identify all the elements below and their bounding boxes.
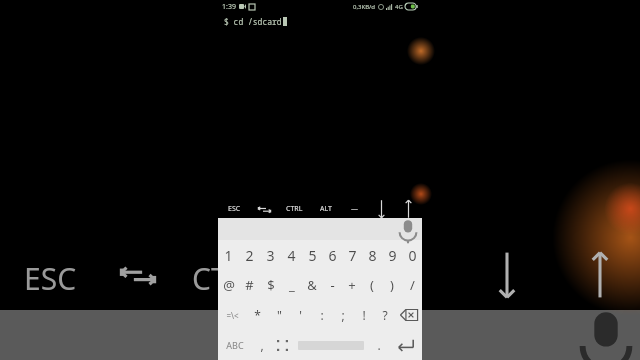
staticText: 2 [245, 246, 254, 265]
staticText: =\< [226, 310, 239, 321]
button[interactable]: 9 [382, 240, 402, 270]
button[interactable]: # [239, 270, 260, 300]
button[interactable]: / [402, 270, 422, 300]
button[interactable]: 6 [322, 240, 342, 270]
staticText: ! [362, 307, 366, 323]
staticText: 5 [308, 246, 317, 265]
button[interactable]: 0 [402, 240, 422, 270]
staticText: 1:39 [222, 2, 236, 12]
button[interactable]: - [322, 270, 342, 300]
button[interactable]: ABC [218, 330, 251, 360]
staticText: 4 [287, 246, 296, 265]
staticText: ALT [320, 204, 332, 214]
staticText: : [320, 307, 324, 323]
staticText: @ [223, 276, 235, 294]
staticText: 6 [328, 246, 337, 265]
button[interactable]: " [268, 300, 290, 330]
staticText: CT [192, 258, 228, 299]
button[interactable]: $ [260, 270, 281, 300]
staticText: 0,3KB/d [353, 3, 376, 11]
button[interactable]: ; [332, 300, 353, 330]
button[interactable]: Tab [251, 200, 278, 218]
button[interactable]: , [251, 330, 272, 360]
button[interactable]: 2 [239, 240, 260, 270]
button[interactable]: _ [281, 270, 302, 300]
staticText: # [245, 276, 254, 294]
button[interactable]: Arrow up [395, 200, 422, 218]
button[interactable]: Space [293, 330, 368, 360]
staticText: 4G [395, 3, 403, 11]
staticText: ( [370, 276, 374, 294]
staticText: 8 [368, 246, 377, 265]
staticText: - [330, 276, 335, 294]
staticText: / [410, 276, 415, 294]
staticText: * [254, 307, 261, 323]
staticText: CTRL [286, 204, 303, 214]
staticText: $ cd /sdcard [224, 16, 282, 27]
button[interactable]: + [342, 270, 362, 300]
button[interactable]: : [311, 300, 332, 330]
staticText: & [307, 276, 317, 294]
staticText: ) [390, 276, 394, 294]
button[interactable]: =\< [218, 300, 246, 330]
button[interactable]: 3 [260, 240, 281, 270]
staticText: ESC [228, 204, 241, 214]
button[interactable]: ESC [218, 200, 251, 218]
staticText: 1 [224, 246, 233, 265]
button[interactable]: 4 [281, 240, 302, 270]
button[interactable]: Voice input [400, 221, 416, 237]
staticText: ? [382, 307, 388, 323]
staticText: 0 [408, 246, 417, 265]
button[interactable]: ? [374, 300, 395, 330]
button[interactable]: * [246, 300, 268, 330]
button[interactable]: 7 [342, 240, 362, 270]
staticText: . [377, 337, 381, 353]
button[interactable]: 1 [218, 240, 239, 270]
staticText: 7 [348, 246, 357, 265]
button[interactable]: 8 [362, 240, 382, 270]
button[interactable]: Enter [389, 330, 422, 360]
button[interactable]: CTRL [278, 200, 311, 218]
staticText: ' [299, 307, 302, 323]
button[interactable]: 5 [302, 240, 322, 270]
staticText: ; [341, 307, 345, 323]
staticText: _ [289, 276, 295, 294]
button[interactable]: Numbers [272, 330, 293, 360]
button[interactable]: @ [218, 270, 239, 300]
button[interactable]: ALT [311, 200, 341, 218]
staticText: ABC [226, 339, 244, 351]
button[interactable]: & [302, 270, 322, 300]
staticText: + [348, 276, 356, 294]
button[interactable]: ' [290, 300, 311, 330]
button[interactable]: — [341, 200, 368, 218]
staticText: — [351, 204, 358, 214]
staticText: $ [267, 276, 275, 294]
button[interactable]: Arrow down [368, 200, 395, 218]
button[interactable]: Backspace [395, 300, 422, 330]
button[interactable]: . [368, 330, 389, 360]
staticText: ESC [24, 258, 77, 299]
button[interactable]: ) [382, 270, 402, 300]
button[interactable]: ! [353, 300, 374, 330]
staticText: " [277, 307, 282, 323]
staticText: , [260, 337, 264, 353]
staticText: 9 [388, 246, 397, 265]
staticText: 3 [266, 246, 275, 265]
button[interactable]: ( [362, 270, 382, 300]
